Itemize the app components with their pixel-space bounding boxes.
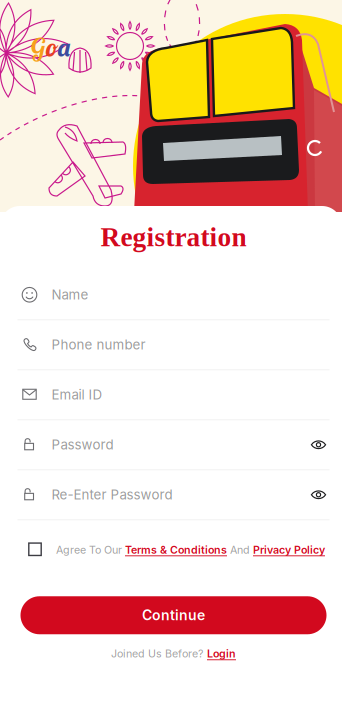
- button[interactable]: Privacy Policy: [253, 543, 325, 556]
- staticText: Email ID: [51, 387, 102, 403]
- staticText: Phone number: [51, 337, 145, 353]
- button[interactable]: Login: [207, 647, 236, 660]
- staticText: Re-Enter Password: [51, 487, 172, 503]
- staticText: Joined Us Before?: [111, 647, 203, 660]
- staticText: Registration: [100, 222, 246, 252]
- staticText: o: [46, 31, 58, 63]
- staticText: Privacy Policy: [253, 543, 325, 556]
- staticText: a: [58, 31, 70, 63]
- staticText: Password: [51, 437, 113, 453]
- button[interactable]: Show password: [302, 483, 326, 507]
- staticText: And: [227, 543, 253, 556]
- button[interactable]: Show password: [302, 433, 326, 457]
- staticText: Name: [51, 287, 88, 303]
- staticText: Continue: [142, 607, 205, 624]
- staticText: G: [31, 31, 46, 63]
- staticText: Login: [207, 647, 236, 660]
- button[interactable]: Agree to terms and conditions: [28, 542, 43, 557]
- button[interactable]: Terms & Conditions: [125, 543, 227, 556]
- button[interactable]: Continue: [20, 596, 326, 634]
- staticText: Agree To Our: [56, 543, 125, 556]
- staticText: Terms & Conditions: [125, 543, 227, 556]
